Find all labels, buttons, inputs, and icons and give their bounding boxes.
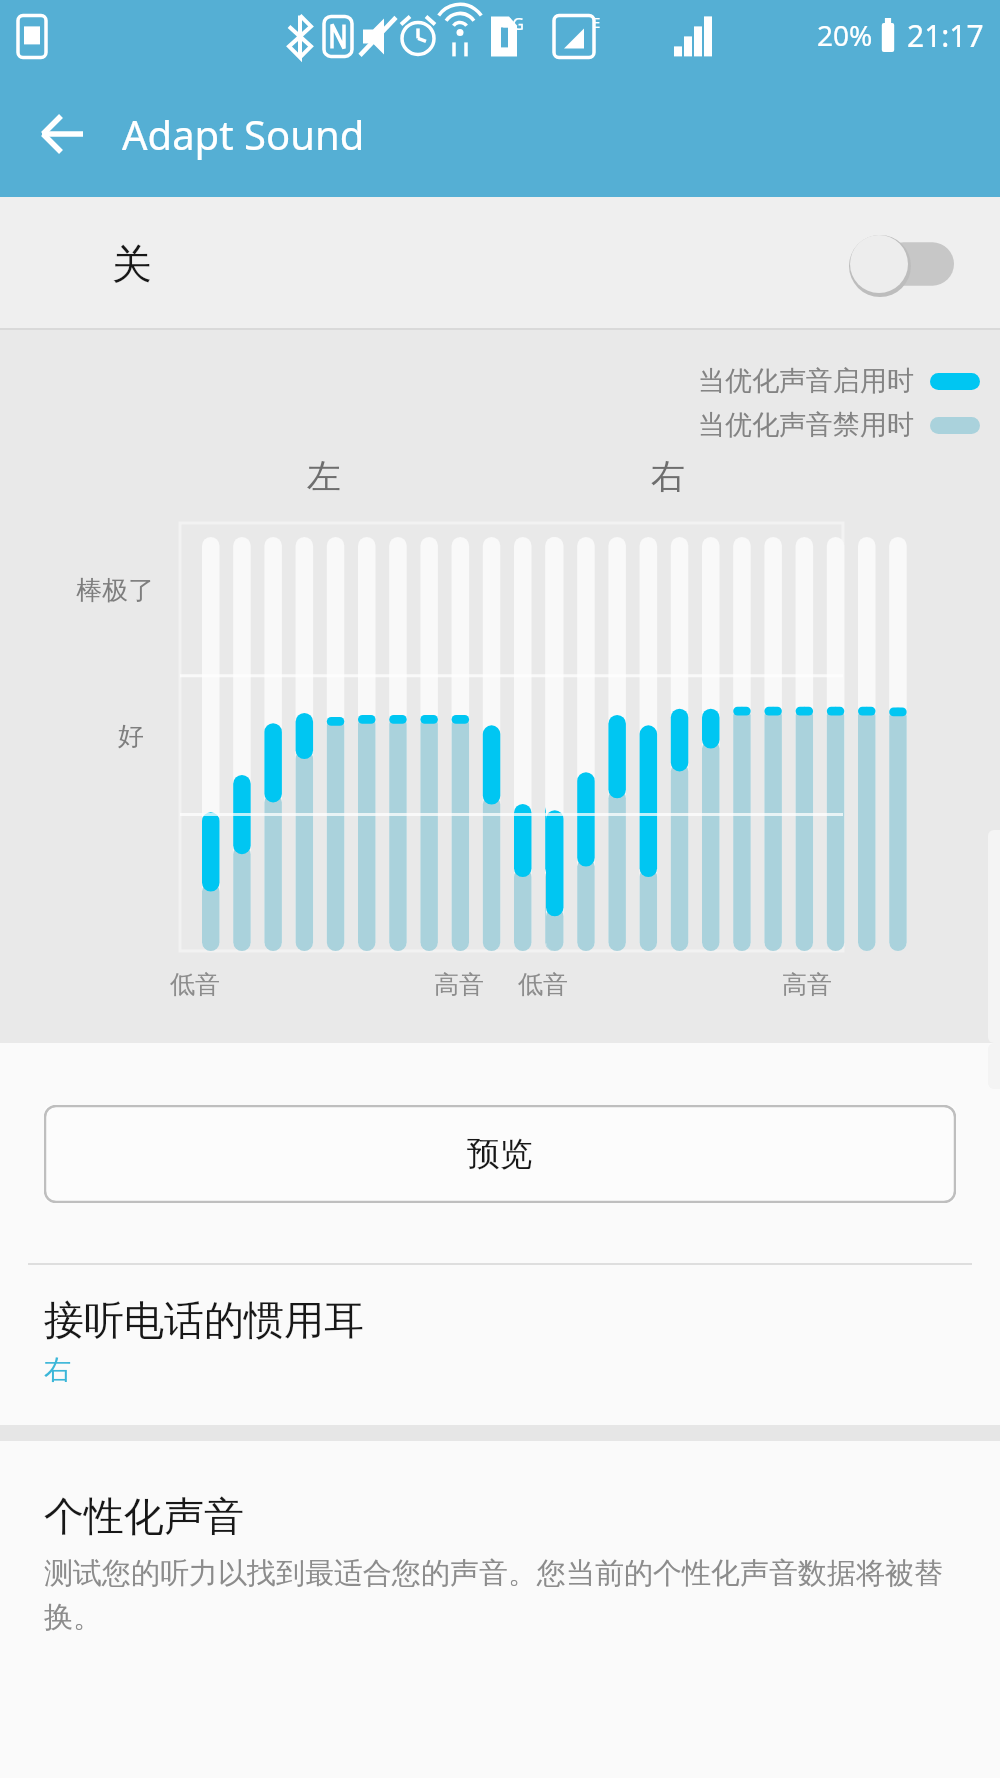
staticText: 测试您的听力以找到最适合您的声音。您当前的个性化声音数据将被替换。 xyxy=(44,1555,966,1635)
button[interactable]: 预览 xyxy=(44,1105,956,1203)
staticText: 接听电话的惯用耳 xyxy=(44,1295,364,1345)
staticText: 左 xyxy=(307,455,341,498)
button[interactable]: 个性化声音 xyxy=(0,1441,1000,1635)
button[interactable]: Back xyxy=(20,92,104,176)
staticText: 棒极了 xyxy=(76,574,154,607)
staticText: 20% xyxy=(817,16,873,54)
staticText: Adapt Sound xyxy=(122,107,365,161)
staticText: 低音 xyxy=(170,969,220,1000)
button[interactable]: Adapt Sound toggle xyxy=(848,233,954,295)
staticText: 低音 xyxy=(518,969,568,1000)
staticText: 关 xyxy=(112,239,152,289)
staticText: E xyxy=(592,12,601,32)
staticText: 右 xyxy=(44,1353,71,1387)
staticText: 个性化声音 xyxy=(44,1491,244,1541)
staticText: 当优化声音禁用时 xyxy=(698,408,914,442)
staticText: 高音 xyxy=(434,969,484,1000)
staticText: 好 xyxy=(118,720,144,753)
button[interactable]: 接听电话的惯用耳 xyxy=(0,1265,1000,1425)
staticText: 21:17 xyxy=(907,15,984,56)
staticText: 预览 xyxy=(467,1133,533,1175)
staticText: 右 xyxy=(651,455,685,498)
staticText: 4G xyxy=(503,13,524,35)
staticText: 当优化声音启用时 xyxy=(698,364,914,398)
button[interactable]: 关 xyxy=(0,197,1000,330)
staticText: 高音 xyxy=(782,969,832,1000)
